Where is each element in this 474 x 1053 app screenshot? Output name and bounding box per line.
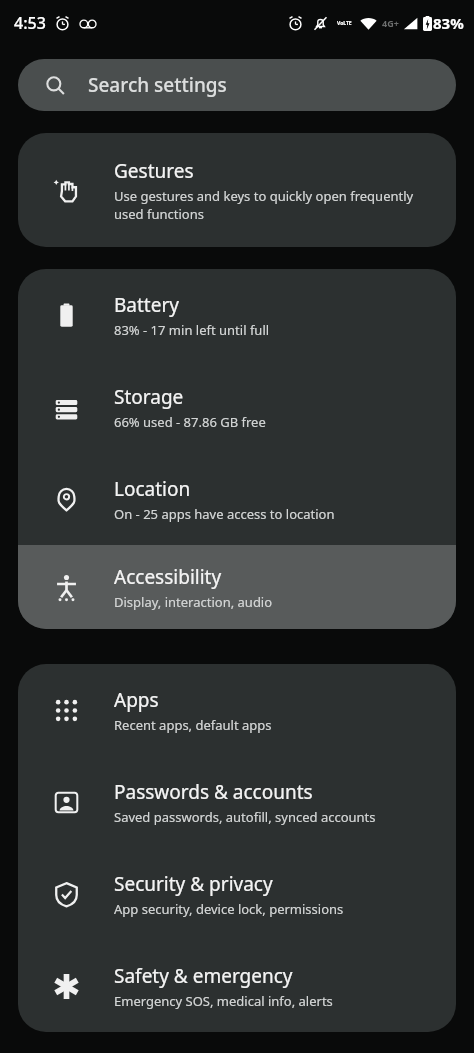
button[interactable]: Security & privacy <box>18 848 456 940</box>
button[interactable]: Storage <box>18 361 456 453</box>
staticText: App security, device lock, permissions <box>114 900 344 918</box>
staticText: Safety & emergency <box>114 963 293 989</box>
staticText: 83% - 17 min left until full <box>114 321 270 339</box>
button[interactable]: Location <box>18 453 456 545</box>
staticText: 83% <box>433 13 464 33</box>
button[interactable]: Battery <box>18 269 456 361</box>
staticText: Emergency SOS, medical info, alerts <box>114 992 333 1010</box>
staticText: Gestures <box>114 158 194 184</box>
staticText: 4:53 <box>14 12 46 34</box>
staticText: 66% used - 87.86 GB free <box>114 413 266 431</box>
staticText: 4G+ <box>382 17 399 29</box>
staticText: Accessibility <box>114 564 222 590</box>
staticText: Display, interaction, audio <box>114 593 273 611</box>
staticText: Search settings <box>88 72 227 98</box>
button[interactable]: Safety & emergency <box>18 940 456 1032</box>
button[interactable]: Gestures <box>18 133 456 247</box>
staticText: On - 25 apps have access to location <box>114 505 335 523</box>
staticText: Recent apps, default apps <box>114 716 272 734</box>
staticText: Security & privacy <box>114 871 273 897</box>
staticText: Apps <box>114 687 159 713</box>
staticText: Location <box>114 476 191 502</box>
staticText: Battery <box>114 292 179 318</box>
button[interactable]: Search settings <box>18 59 456 111</box>
button[interactable]: Passwords & accounts <box>18 756 456 848</box>
staticText: VoLTE <box>337 20 352 27</box>
button[interactable]: Apps <box>18 664 456 756</box>
staticText: Use gestures and keys to quickly open fr… <box>114 187 430 223</box>
button[interactable]: Accessibility <box>18 545 456 629</box>
staticText: Passwords & accounts <box>114 779 313 805</box>
staticText: Storage <box>114 384 184 410</box>
staticText: Saved passwords, autofill, synced accoun… <box>114 808 376 826</box>
